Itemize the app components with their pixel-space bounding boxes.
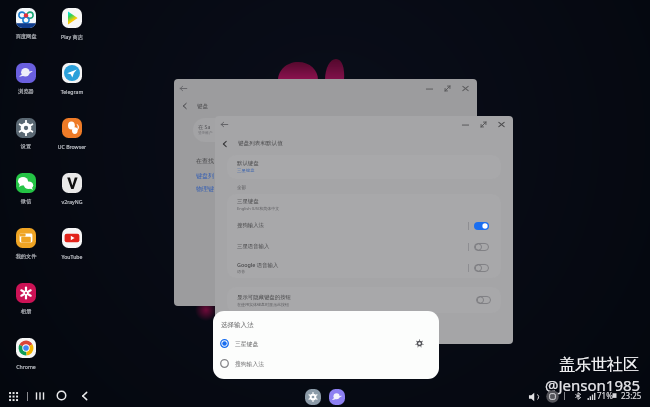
staticText: 语音	[237, 269, 246, 274]
staticText: 盖乐世社区	[559, 355, 639, 375]
staticText: 在使用实体键盘时显示此按钮	[237, 302, 289, 307]
button[interactable]: 相册	[2, 283, 50, 315]
staticText: 键盘列表和默认值	[238, 140, 283, 147]
staticText: 搜狗输入法	[235, 360, 264, 367]
staticText: 23:25	[621, 390, 642, 401]
staticText: 百度网盘	[2, 33, 50, 40]
staticText: 微信	[2, 198, 50, 205]
staticText: 选择输入法	[221, 321, 254, 329]
button[interactable]: Close	[496, 119, 507, 130]
button[interactable]: 浏览器	[2, 63, 50, 95]
button[interactable]: All apps	[6, 389, 20, 403]
staticText: Play 商店	[48, 33, 96, 40]
button[interactable]: Chrome	[2, 338, 50, 370]
button[interactable]: Maximize	[442, 83, 453, 94]
button[interactable]: 微信	[2, 173, 50, 205]
button[interactable]: Back	[219, 119, 230, 130]
staticText: Google 语音输入	[237, 261, 279, 268]
staticText: 三星键盘	[237, 168, 255, 174]
button[interactable]: v2rayNG	[48, 173, 96, 205]
button[interactable]: 三星键盘	[213, 333, 439, 353]
button[interactable]: Minimize	[460, 119, 471, 130]
staticText: 三星语音输入	[237, 243, 270, 250]
staticText: 三星键盘	[235, 340, 259, 347]
button[interactable]: 搜狗输入法	[227, 215, 501, 236]
button[interactable]: 搜狗输入法	[213, 353, 439, 373]
staticText: YouTube	[48, 253, 96, 260]
staticText: 登录帐户	[198, 131, 213, 136]
staticText: 全部	[237, 185, 247, 191]
staticText: UC Browser	[48, 143, 96, 150]
button[interactable]: 显示可隐藏键盘的按钮	[227, 287, 501, 313]
button[interactable]: Internet browser	[329, 389, 345, 405]
button[interactable]: Home	[54, 388, 69, 403]
staticText: 设置	[2, 143, 50, 150]
staticText: 浏览器	[2, 88, 50, 95]
button[interactable]: 物理键	[196, 185, 214, 193]
staticText: 键盘	[197, 103, 209, 110]
button[interactable]: YouTube	[48, 228, 96, 260]
button[interactable]: Back	[78, 389, 92, 403]
other: Mobile signal	[587, 391, 596, 400]
staticText: 搜狗输入法	[237, 222, 264, 229]
button[interactable]: Navigate up	[220, 139, 230, 149]
staticText: Chrome	[2, 363, 50, 370]
button[interactable]: Recent apps	[33, 389, 47, 403]
button[interactable]: 在 Sa	[193, 118, 245, 142]
staticText: 显示可隐藏键盘的按钮	[237, 294, 291, 301]
button[interactable]: Telegram	[48, 63, 96, 95]
button[interactable]: Off	[474, 243, 489, 251]
button[interactable]: Screen capture	[546, 390, 559, 403]
button[interactable]: Google 语音输入	[227, 257, 501, 278]
button[interactable]: Keyboard settings	[413, 337, 426, 350]
button[interactable]: On	[474, 222, 489, 230]
button[interactable]: 我的文件	[2, 228, 50, 260]
button[interactable]: 键盘列	[196, 172, 214, 180]
staticText: 71%	[597, 390, 613, 401]
staticText: Telegram	[48, 88, 96, 95]
button[interactable]: 三星键盘	[227, 194, 501, 215]
other: Bluetooth	[573, 391, 583, 401]
staticText: v2rayNG	[48, 198, 96, 205]
button[interactable]: 三星语音输入	[227, 236, 501, 257]
staticText: 默认键盘	[237, 160, 259, 167]
button[interactable]: Back	[178, 83, 189, 94]
button[interactable]: Minimize	[424, 83, 435, 94]
button[interactable]: 默认键盘	[227, 155, 501, 179]
staticText: English (US)和简体中文	[237, 206, 280, 211]
button[interactable]: Volume	[528, 391, 540, 403]
button[interactable]: UC Browser	[48, 118, 96, 150]
button[interactable]: Maximize	[478, 119, 489, 130]
button[interactable]: Play 商店	[48, 8, 96, 40]
staticText: 我的文件	[2, 253, 50, 260]
button[interactable]: Settings	[305, 389, 321, 405]
button[interactable]: Off	[474, 264, 489, 272]
staticText: 相册	[2, 308, 50, 315]
button[interactable]: 设置	[2, 118, 50, 150]
button[interactable]: 在查找	[196, 157, 214, 165]
button[interactable]: 百度网盘	[2, 8, 50, 40]
staticText: 三星键盘	[237, 198, 259, 205]
button[interactable]: Close	[460, 83, 471, 94]
staticText: @Jenson1985	[545, 375, 641, 395]
staticText: 在 Sa	[198, 123, 211, 130]
button[interactable]: Off	[476, 296, 491, 304]
